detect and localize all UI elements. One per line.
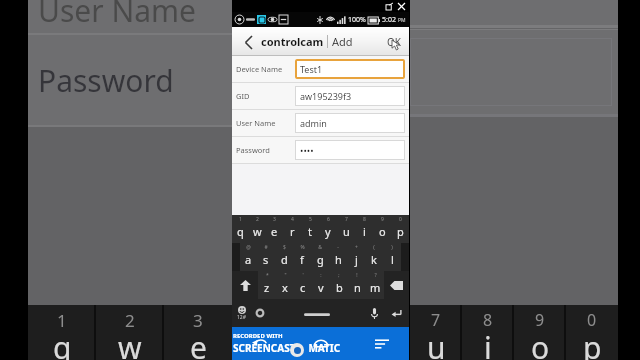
- staticText: v: [318, 280, 324, 295]
- staticText: 8: [363, 216, 366, 223]
- staticText: j: [355, 252, 358, 267]
- staticText: 7: [431, 309, 441, 331]
- button[interactable]: Close: [396, 1, 406, 11]
- staticText: controlcam: [261, 34, 324, 49]
- staticText: Password: [38, 60, 174, 101]
- staticText: m: [370, 280, 381, 295]
- staticText: *: [266, 272, 269, 279]
- button[interactable]: Back: [242, 327, 276, 360]
- button[interactable]: OK: [379, 27, 409, 56]
- button[interactable]: :: [312, 271, 330, 299]
- staticText: Device Name: [236, 64, 295, 74]
- button[interactable]: Restore window: [384, 1, 394, 11]
- staticText: r: [290, 224, 295, 239]
- button[interactable]: *: [258, 271, 276, 299]
- button[interactable]: Backspace: [384, 271, 409, 299]
- staticText: u: [427, 327, 446, 360]
- staticText: e: [271, 224, 278, 239]
- button[interactable]: 6: [319, 215, 337, 243]
- staticText: q: [53, 327, 72, 360]
- button[interactable]: !: [348, 271, 366, 299]
- staticText: 0: [587, 309, 597, 331]
- staticText: GID: [236, 91, 295, 101]
- button[interactable]: 8: [355, 215, 373, 243]
- button[interactable]: GID: [232, 83, 409, 109]
- staticText: #: [264, 244, 268, 251]
- staticText: ?: [374, 272, 377, 279]
- staticText: ••••: [300, 144, 314, 156]
- button[interactable]: -: [329, 243, 347, 271]
- button[interactable]: $: [275, 243, 293, 271]
- button[interactable]: #: [257, 243, 275, 271]
- staticText: w: [118, 327, 142, 360]
- staticText: Add: [332, 34, 353, 49]
- staticText: User Name: [236, 118, 295, 128]
- staticText: n: [354, 280, 361, 295]
- button[interactable]: +: [347, 243, 365, 271]
- staticText: g: [317, 252, 324, 267]
- button[interactable]: Device Name: [232, 56, 409, 82]
- button[interactable]: 0: [391, 215, 409, 243]
- staticText: h: [335, 252, 342, 267]
- button[interactable]: Emoji: [232, 299, 251, 327]
- staticText: q: [237, 224, 244, 239]
- staticText: 1: [57, 309, 67, 332]
- staticText: d: [281, 252, 288, 267]
- staticText: SCREENCAST MATIC: [233, 341, 341, 355]
- staticText: RECORDED WITH: [233, 332, 283, 340]
- button[interactable]: ": [276, 271, 294, 299]
- staticText: t: [308, 224, 312, 239]
- staticText: 6: [327, 216, 330, 223]
- staticText: ;: [338, 272, 340, 279]
- button[interactable]: (: [365, 243, 383, 271]
- staticText: ": [284, 272, 287, 279]
- button[interactable]: 5: [301, 215, 319, 243]
- staticText: :: [320, 272, 322, 279]
- button[interactable]: Home: [304, 327, 338, 360]
- button[interactable]: ): [383, 243, 401, 271]
- button[interactable]: %: [293, 243, 311, 271]
- staticText: Password: [236, 145, 295, 155]
- button[interactable]: 3: [266, 215, 283, 243]
- staticText: 1: [239, 216, 242, 223]
- staticText: p: [397, 224, 404, 239]
- button[interactable]: ': [294, 271, 312, 299]
- button[interactable]: 2: [249, 215, 266, 243]
- staticText: (: [373, 244, 375, 251]
- staticText: a: [245, 252, 252, 267]
- button[interactable]: Voice input: [365, 299, 383, 327]
- button[interactable]: 1: [232, 215, 249, 243]
- staticText: User Name: [38, 0, 197, 23]
- button[interactable]: ;: [330, 271, 348, 299]
- staticText: o: [531, 327, 550, 360]
- staticText: &: [318, 244, 322, 251]
- button[interactable]: Enter: [383, 299, 409, 327]
- button[interactable]: Back: [238, 32, 258, 52]
- button[interactable]: Shift: [232, 271, 258, 299]
- staticText: k: [371, 252, 377, 267]
- button[interactable]: 4: [283, 215, 301, 243]
- button[interactable]: Input settings: [251, 299, 269, 327]
- staticText: p: [583, 327, 602, 360]
- button[interactable]: 7: [337, 215, 355, 243]
- button[interactable]: 9: [373, 215, 391, 243]
- button[interactable]: Space: [269, 299, 365, 327]
- staticText: z: [264, 280, 270, 295]
- staticText: i: [363, 224, 366, 239]
- staticText: f: [300, 252, 304, 267]
- button[interactable]: @: [240, 243, 257, 271]
- button[interactable]: User Name: [232, 110, 409, 136]
- staticText: aw195239f3: [300, 90, 352, 102]
- staticText: OK: [387, 35, 401, 49]
- staticText: w: [253, 224, 262, 239]
- button[interactable]: ?: [366, 271, 384, 299]
- staticText: Test1: [300, 63, 323, 75]
- button[interactable]: &: [311, 243, 329, 271]
- staticText: 8: [483, 309, 493, 331]
- staticText: i: [484, 327, 492, 360]
- staticText: PM: [398, 17, 406, 24]
- staticText: u: [343, 224, 350, 239]
- button[interactable]: Recent apps: [365, 327, 399, 360]
- staticText: 2: [256, 216, 259, 223]
- button[interactable]: Password: [232, 137, 409, 163]
